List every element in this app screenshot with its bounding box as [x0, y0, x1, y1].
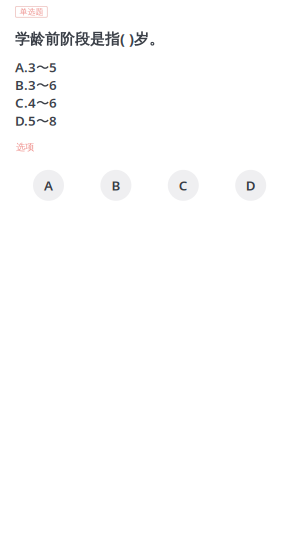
staticText: 选项 [16, 141, 34, 153]
staticText: 学龄前阶段是指( )岁。 [15, 29, 164, 48]
staticText: A [44, 176, 53, 194]
staticText: B.3〜6 [15, 76, 57, 94]
staticText: C [179, 176, 188, 194]
button[interactable]: C [168, 170, 199, 201]
button[interactable]: D [235, 170, 266, 201]
staticText: C.4〜6 [15, 94, 57, 112]
staticText: D [246, 176, 256, 194]
button[interactable]: A [33, 170, 64, 201]
button[interactable]: B [100, 170, 131, 201]
staticText: B [111, 176, 120, 194]
staticText: D.5〜8 [15, 112, 57, 129]
staticText: 单选题 [19, 7, 43, 17]
staticText: A.3〜5 [15, 58, 57, 76]
